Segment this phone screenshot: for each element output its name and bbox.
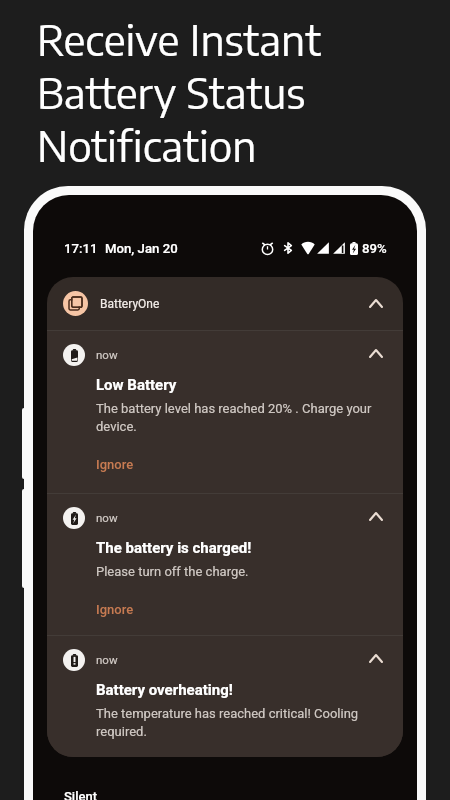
button[interactable]: Ignore: [96, 602, 134, 617]
button[interactable]: BatteryOne: [47, 277, 403, 330]
other: Collapse: [369, 299, 383, 308]
staticText: now: [96, 348, 118, 361]
staticText: The temperature has reached critical! Co…: [96, 706, 383, 739]
button[interactable]: Collapse: [47, 331, 403, 493]
staticText: Mon, Jan 20: [105, 241, 178, 256]
other: Collapse: [369, 512, 383, 521]
staticText: Receive Instant: [37, 12, 322, 65]
staticText: 89%: [362, 241, 387, 256]
staticText: Silent: [64, 789, 98, 800]
staticText: 17:11: [64, 241, 98, 256]
staticText: The battery is charged!: [96, 539, 252, 557]
staticText: Battery Status: [37, 65, 306, 118]
button[interactable]: Ignore: [96, 457, 134, 472]
staticText: Please turn off the charge.: [96, 564, 249, 579]
other: Collapse: [369, 654, 383, 663]
other: Collapse: [369, 349, 383, 358]
button[interactable]: Collapse: [47, 636, 403, 757]
staticText: The battery level has reached 20% . Char…: [96, 401, 383, 434]
button[interactable]: Collapse: [47, 494, 403, 635]
staticText: now: [96, 653, 118, 666]
staticText: Battery overheating!: [96, 681, 233, 699]
staticText: BatteryOne: [100, 297, 160, 311]
staticText: Notification: [37, 118, 257, 171]
staticText: now: [96, 511, 118, 524]
staticText: Low Battery: [96, 376, 177, 394]
